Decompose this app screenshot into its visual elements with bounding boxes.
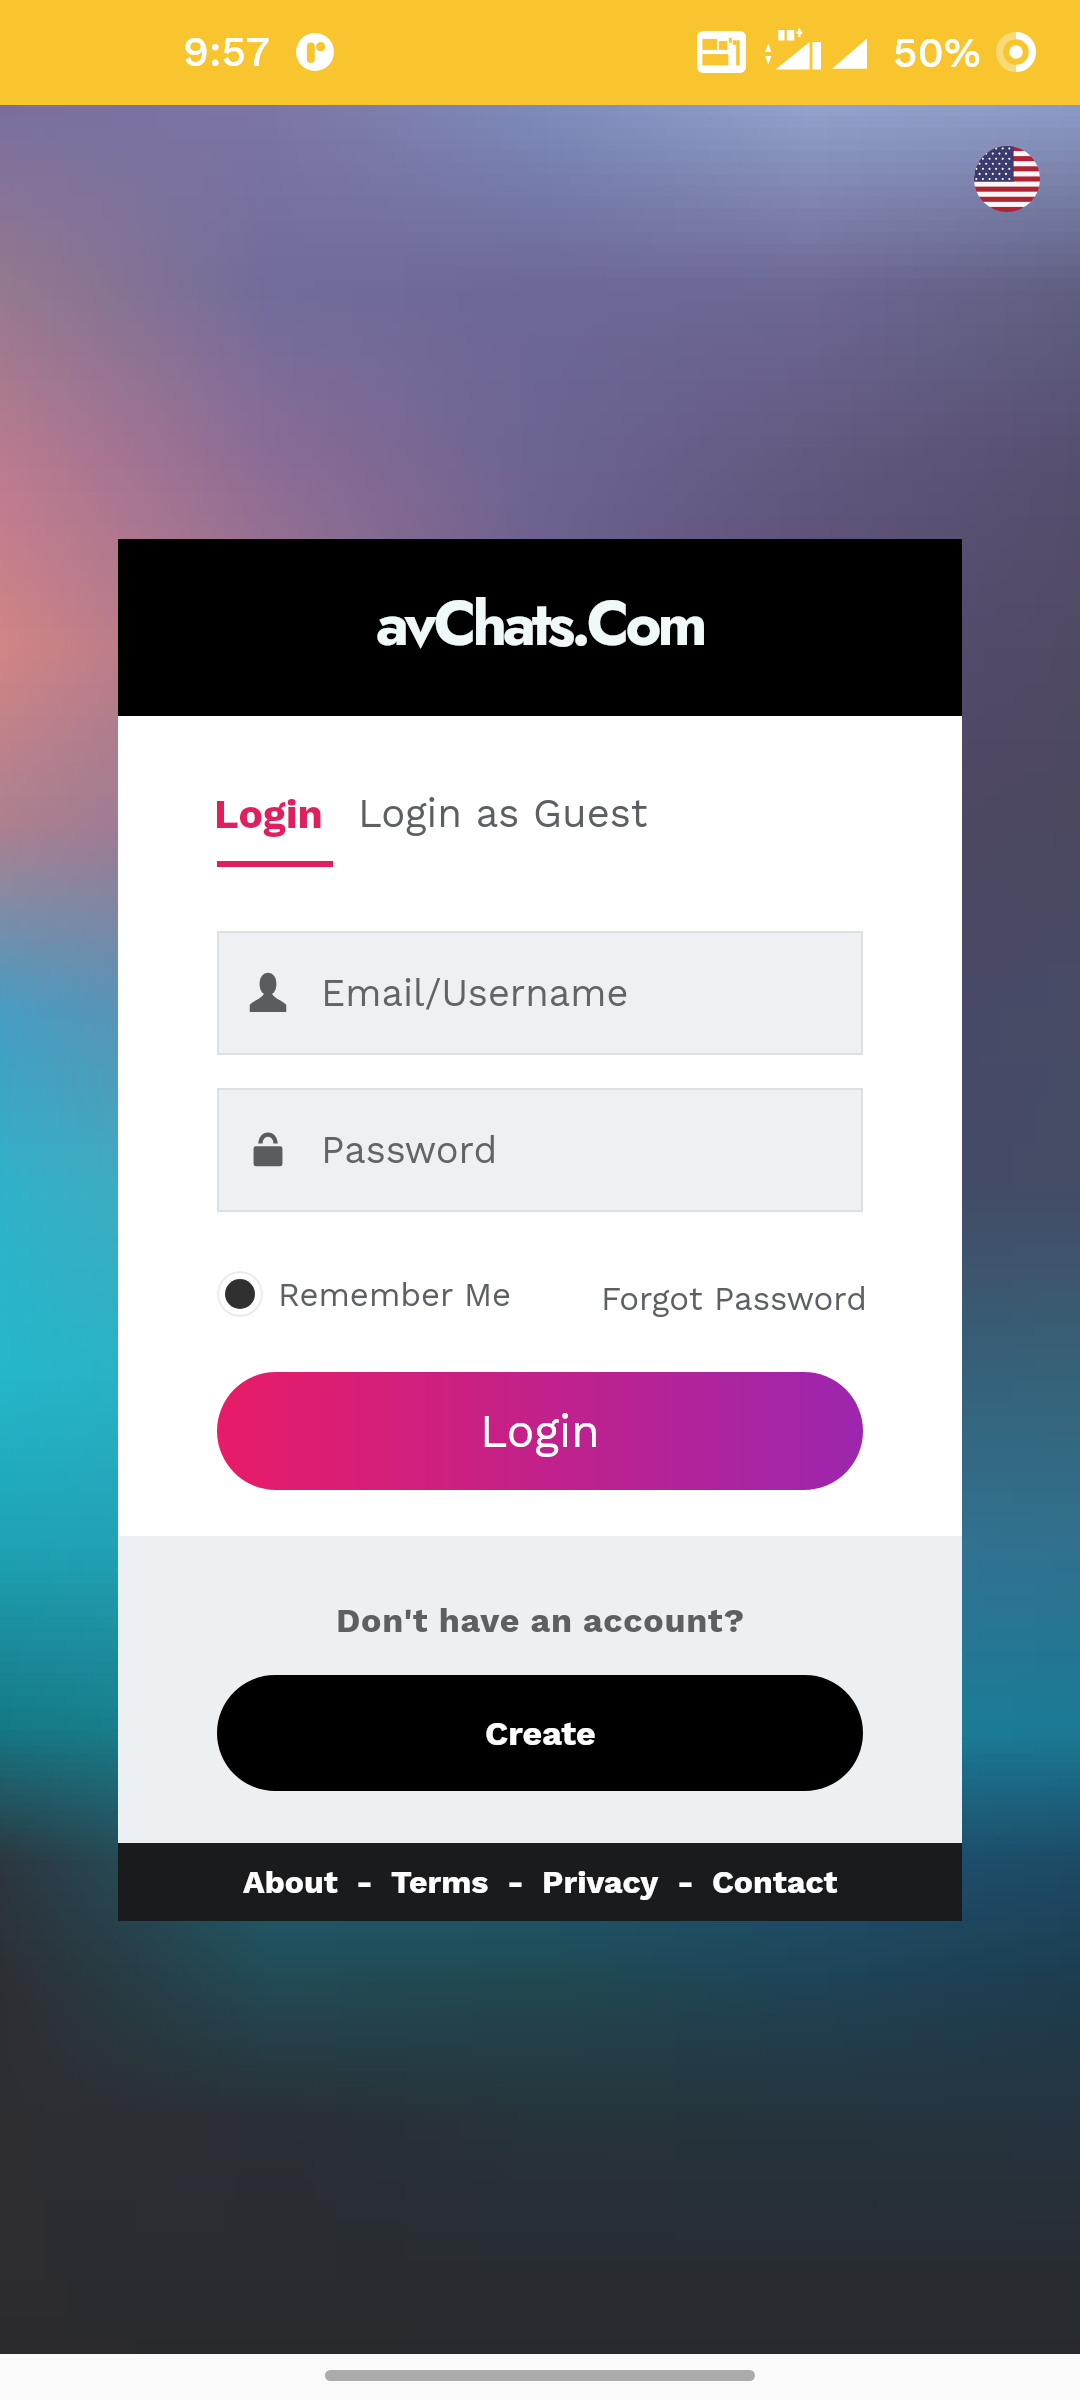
staticText: Forgot Password xyxy=(601,1279,867,1318)
staticText: Privacy xyxy=(542,1863,659,1901)
staticText: Login xyxy=(214,790,324,838)
staticText: 50% xyxy=(893,28,981,77)
staticText: Login as Guest xyxy=(358,790,648,837)
staticText: Create xyxy=(485,1713,596,1753)
staticText: About xyxy=(243,1863,338,1901)
button[interactable]: Forgot Password xyxy=(601,1279,867,1318)
button[interactable]: Login as Guest xyxy=(358,790,648,837)
staticText: Login xyxy=(480,1404,600,1458)
staticText: Don't have an account? xyxy=(336,1600,745,1640)
button[interactable]: Password xyxy=(217,1088,863,1212)
staticText: - xyxy=(677,1863,694,1901)
staticText: - xyxy=(356,1863,373,1901)
staticText: Terms xyxy=(391,1863,489,1901)
staticText: avChats.Com xyxy=(376,580,704,668)
button[interactable]: Remember Me xyxy=(217,1271,512,1317)
staticText: Contact xyxy=(712,1863,838,1901)
button[interactable]: Change language xyxy=(974,146,1040,212)
staticText: 9:57 xyxy=(183,27,270,76)
button[interactable]: Login xyxy=(217,1372,863,1490)
staticText: Remember Me xyxy=(278,1275,512,1314)
button[interactable]: Login xyxy=(214,790,324,838)
staticText: - xyxy=(507,1863,524,1901)
button[interactable]: Contact xyxy=(708,1863,842,1901)
button[interactable]: About xyxy=(239,1863,342,1901)
staticText: Email/Username xyxy=(321,971,629,1016)
staticText: Password xyxy=(321,1128,498,1173)
button[interactable]: Terms xyxy=(387,1863,493,1901)
button[interactable]: Privacy xyxy=(538,1863,663,1901)
button[interactable]: Email/Username xyxy=(217,931,863,1055)
button[interactable]: Create xyxy=(217,1675,863,1791)
